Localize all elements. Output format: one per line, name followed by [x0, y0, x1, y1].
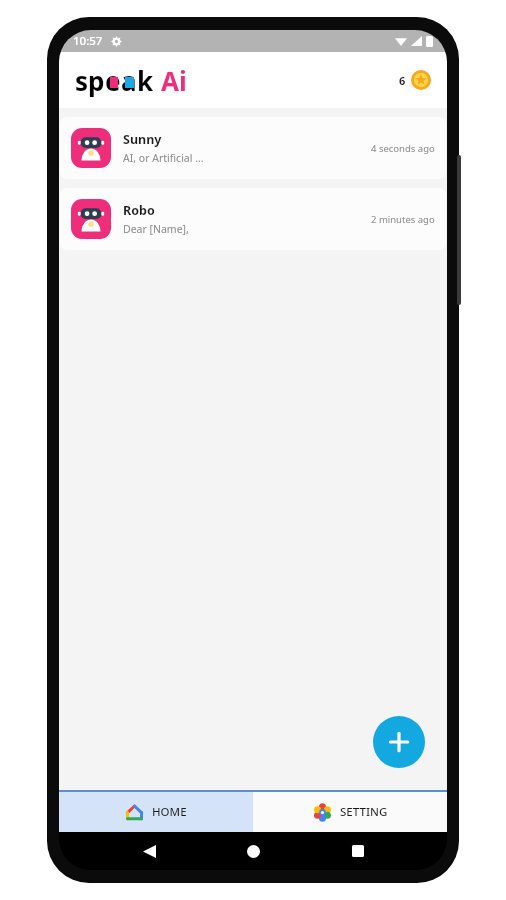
staticText: e — [105, 63, 121, 98]
button[interactable]: Robo — [60, 188, 446, 250]
button[interactable]: Add new chat — [373, 716, 425, 768]
button[interactable]: Recents — [343, 836, 373, 866]
staticText: a — [121, 63, 137, 98]
button[interactable]: Back — [134, 836, 164, 866]
button[interactable]: Sunny — [60, 117, 446, 179]
button[interactable]: HOME — [59, 792, 253, 832]
staticText: sp — [75, 63, 105, 98]
staticText: 6 — [399, 73, 406, 88]
button[interactable]: SETTING — [253, 792, 447, 832]
staticText: HOME — [152, 804, 187, 820]
staticText: SETTING — [340, 804, 388, 820]
staticText: Sunny — [123, 131, 162, 148]
staticText: Ai — [161, 63, 187, 98]
button[interactable]: 6 — [399, 70, 431, 90]
staticText: 4 seconds ago — [371, 142, 435, 155]
staticText: 10:57 — [73, 33, 103, 49]
staticText: Robo — [123, 202, 155, 219]
staticText: AI, or Artificial … — [123, 151, 204, 165]
button[interactable]: Home — [238, 836, 268, 866]
staticText: Dear [Name], — [123, 222, 189, 236]
staticText: k — [137, 63, 154, 98]
staticText: 2 minutes ago — [371, 213, 435, 226]
